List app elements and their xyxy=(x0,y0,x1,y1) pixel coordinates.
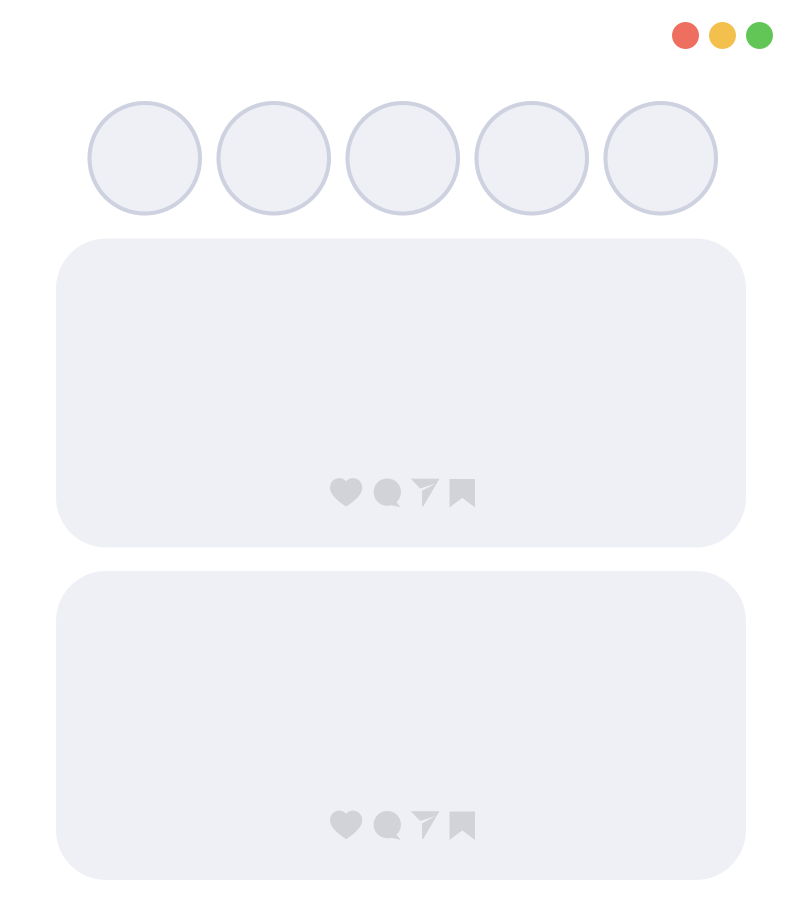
button[interactable]: Comment xyxy=(372,810,401,840)
button[interactable]: Save xyxy=(449,810,475,840)
button[interactable]: Minimize xyxy=(709,22,736,49)
button[interactable]: Comment xyxy=(372,477,401,507)
button[interactable]: Like xyxy=(330,810,362,840)
button[interactable]: Like xyxy=(330,477,362,507)
button[interactable]: Close xyxy=(672,22,699,49)
button[interactable]: Save xyxy=(449,477,475,507)
button[interactable]: Maximize xyxy=(746,22,773,49)
button[interactable]: Story placeholder xyxy=(216,101,331,215)
button[interactable]: Story placeholder xyxy=(603,101,718,215)
button[interactable]: Share xyxy=(411,477,439,507)
button[interactable]: Share xyxy=(411,810,439,840)
button[interactable]: Story placeholder xyxy=(87,101,202,215)
button[interactable]: Story placeholder xyxy=(474,101,589,215)
button[interactable]: Story placeholder xyxy=(345,101,460,215)
